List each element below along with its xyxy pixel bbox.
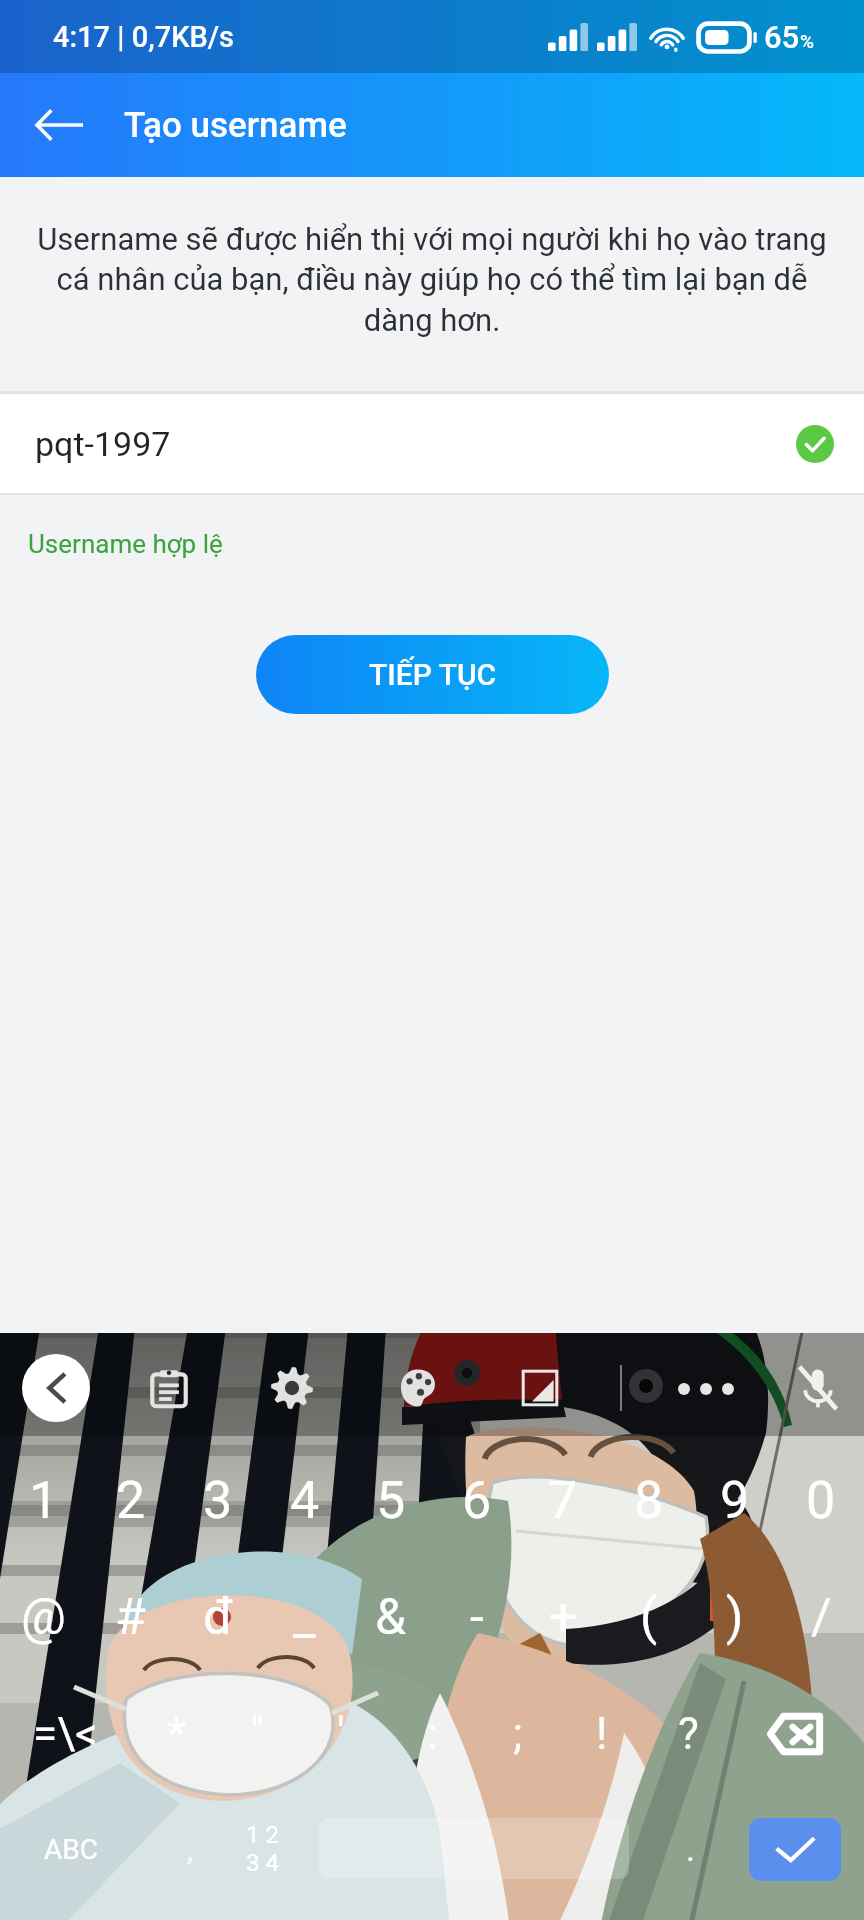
staticText: ( [640, 1588, 658, 1647]
button[interactable]: Backspace [750, 1679, 840, 1789]
staticText: Username hợp lệ [28, 529, 223, 559]
staticText: ; [513, 1708, 523, 1760]
staticText: pqt-1997 [35, 424, 171, 464]
button[interactable]: đ [174, 1557, 261, 1677]
button[interactable]: Back [22, 1354, 90, 1422]
button[interactable]: " [214, 1676, 300, 1792]
staticText: 2 [116, 1470, 146, 1531]
button[interactable]: 9 [692, 1440, 778, 1560]
staticText: 5 [376, 1470, 406, 1531]
button[interactable]: * [133, 1676, 219, 1792]
staticText: ABC [44, 1833, 98, 1866]
button[interactable]: ? [645, 1676, 731, 1792]
button[interactable]: # [87, 1557, 174, 1677]
button[interactable]: 4 [261, 1440, 348, 1560]
staticText: @ [21, 1588, 66, 1647]
button[interactable]: ' [298, 1676, 384, 1792]
button[interactable]: Back [22, 87, 98, 163]
staticText: - [470, 1588, 484, 1647]
button[interactable]: Settings [256, 1352, 328, 1424]
staticText: 6 [462, 1470, 492, 1531]
staticText: _ [293, 1588, 316, 1647]
button[interactable]: Mute microphone [782, 1352, 854, 1424]
button[interactable]: : [389, 1676, 475, 1792]
button[interactable]: Space [319, 1818, 629, 1879]
button[interactable]: 5 [348, 1440, 434, 1560]
button[interactable]: TIẾP TỤC [256, 635, 609, 714]
button[interactable]: 6 [434, 1440, 520, 1560]
staticText: 8 [634, 1470, 664, 1531]
staticText: 1 [29, 1470, 59, 1531]
button[interactable]: 8 [606, 1440, 692, 1560]
button[interactable]: 1 [0, 1440, 87, 1560]
staticText: , [187, 1832, 193, 1867]
staticText: 3 [203, 1470, 233, 1531]
staticText: 9 [720, 1470, 750, 1531]
staticText: =\< [33, 1708, 98, 1760]
staticText: 65 [764, 19, 800, 55]
button[interactable]: ; [475, 1676, 561, 1792]
button[interactable]: & [348, 1557, 434, 1677]
staticText: ! [596, 1708, 608, 1760]
staticText: 7 [548, 1470, 578, 1531]
button[interactable]: ) [692, 1557, 778, 1677]
button[interactable]: ( [606, 1557, 692, 1677]
staticText: . [686, 1829, 695, 1869]
staticText: TIẾP TỤC [369, 657, 497, 692]
staticText: ? [678, 1708, 699, 1760]
button[interactable]: 0 [778, 1440, 864, 1560]
staticText: % [800, 30, 814, 52]
staticText: Username sẽ được hiển thị với mọi người … [37, 221, 827, 339]
button[interactable]: @ [0, 1557, 87, 1677]
staticText: : [427, 1708, 438, 1760]
staticText: 1 2 [246, 1821, 279, 1849]
button[interactable]: / [778, 1557, 864, 1677]
staticText: / [811, 1588, 832, 1647]
button[interactable]: ABC [8, 1806, 134, 1892]
staticText: 0 [806, 1470, 836, 1531]
button[interactable]: Enter [749, 1818, 841, 1881]
staticText: 4:17 | 0,7KB/s [53, 20, 235, 54]
staticText: + [549, 1588, 578, 1647]
button[interactable]: , [150, 1806, 230, 1892]
button[interactable]: - [434, 1557, 520, 1677]
button[interactable]: . [650, 1812, 730, 1886]
button[interactable]: =\< [22, 1676, 108, 1792]
button[interactable]: ! [559, 1676, 645, 1792]
staticText: Tạo username [124, 105, 347, 146]
staticText: & [375, 1588, 407, 1647]
button[interactable]: pqt-1997 [0, 394, 864, 493]
staticText: ) [726, 1588, 744, 1647]
staticText: # [115, 1588, 146, 1647]
staticText: * [167, 1708, 186, 1760]
staticText: 4 [290, 1470, 320, 1531]
button[interactable]: Theme [382, 1352, 454, 1424]
staticText: đ [203, 1588, 233, 1647]
button[interactable]: + [520, 1557, 606, 1677]
button[interactable]: 7 [520, 1440, 606, 1560]
staticText: " [250, 1708, 265, 1760]
staticText: 3 4 [246, 1849, 279, 1877]
button[interactable]: Resize keyboard [504, 1352, 576, 1424]
button[interactable]: 3 [174, 1440, 261, 1560]
button[interactable]: 1 2 [218, 1804, 306, 1894]
button[interactable]: 2 [87, 1440, 174, 1560]
staticText: ' [337, 1708, 345, 1760]
button[interactable]: Clipboard [133, 1352, 205, 1424]
button[interactable]: _ [261, 1557, 348, 1677]
